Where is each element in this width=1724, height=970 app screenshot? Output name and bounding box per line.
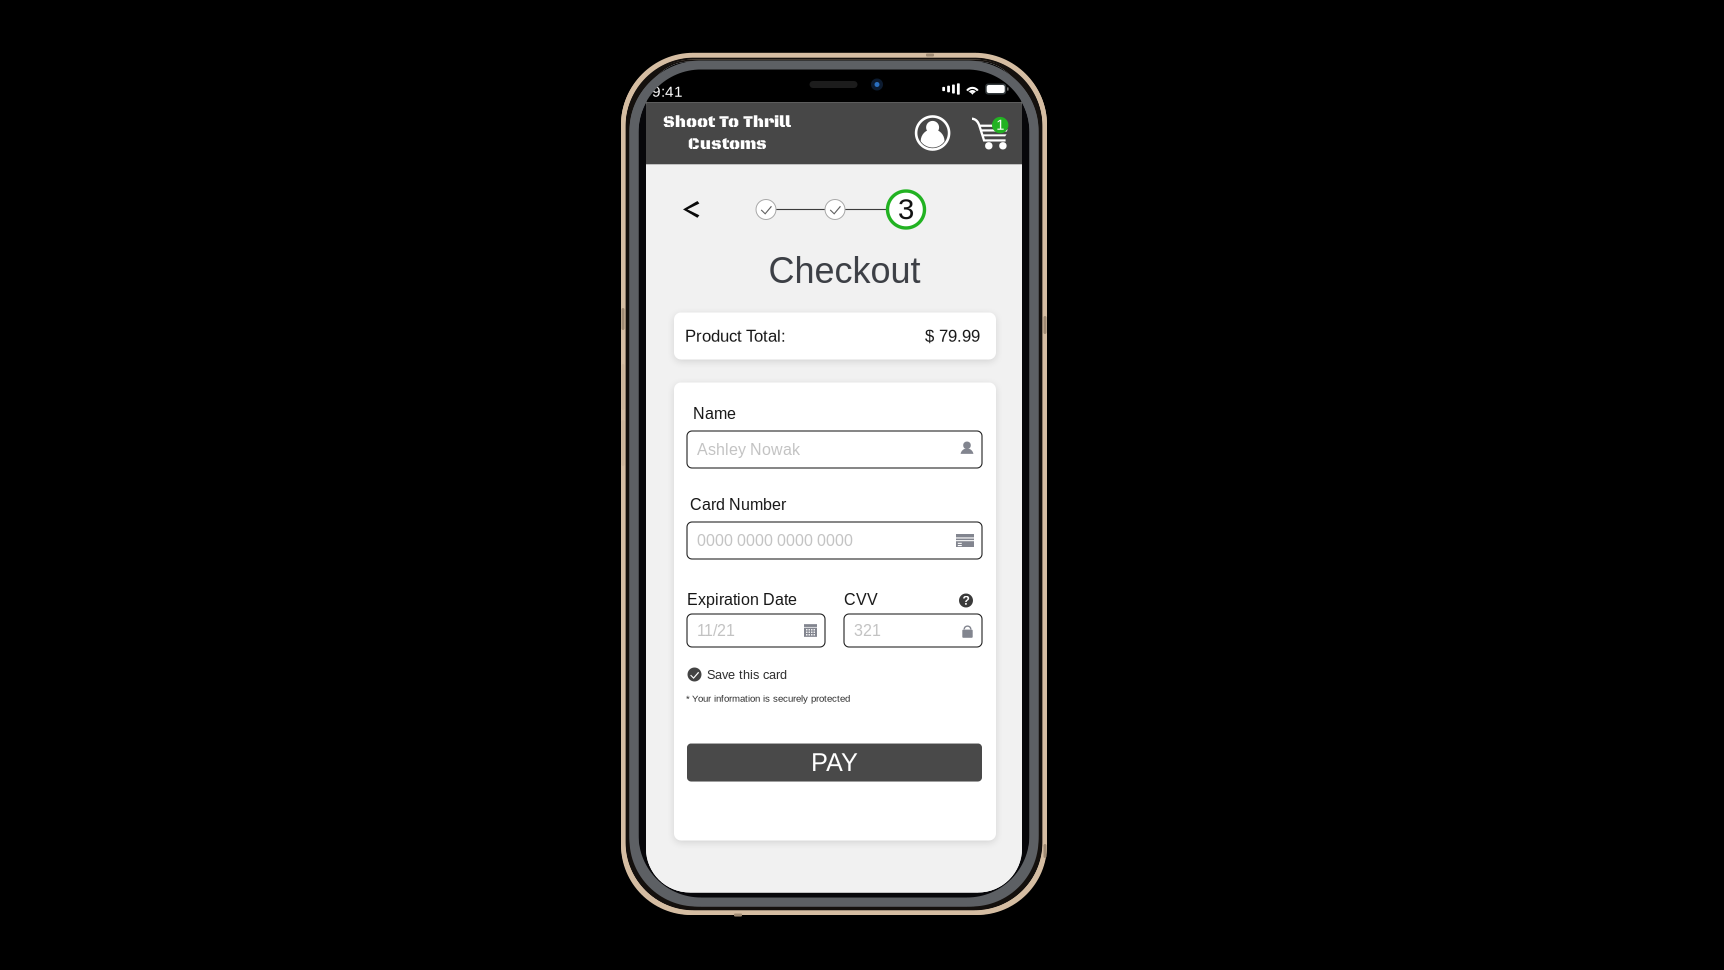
staticText: 9:41	[652, 83, 683, 100]
staticText: 11/21	[697, 622, 735, 639]
staticText: CVV	[844, 591, 878, 608]
staticText: ?	[962, 594, 969, 607]
button[interactable]: PAY	[687, 743, 982, 781]
staticText: Expiration Date	[687, 591, 797, 608]
staticText: Save this card	[707, 667, 787, 682]
staticText: Card Number	[690, 496, 786, 513]
staticText: * Your information is securely protected	[686, 693, 850, 704]
button[interactable]: Back	[669, 187, 713, 231]
staticText: Product Total:	[685, 327, 786, 345]
button[interactable]: Save this card	[687, 663, 807, 685]
staticText: 0000 0000 0000 0000	[697, 532, 853, 549]
button[interactable]: Shopping cart, 1 item	[970, 112, 1014, 156]
staticText: Name	[693, 405, 736, 422]
staticText: 1	[996, 116, 1004, 133]
staticText: Shoot To Thrill	[663, 112, 791, 133]
staticText: 321	[854, 622, 881, 639]
button[interactable]: What is a CVV	[953, 587, 979, 613]
button[interactable]: Account	[911, 111, 955, 155]
staticText: 3	[898, 193, 914, 225]
staticText: Ashley Nowak	[697, 441, 800, 458]
staticText: $ 79.99	[925, 327, 980, 345]
staticText: Checkout	[768, 250, 920, 291]
staticText: PAY	[811, 748, 858, 777]
staticText: Customs	[688, 134, 767, 155]
